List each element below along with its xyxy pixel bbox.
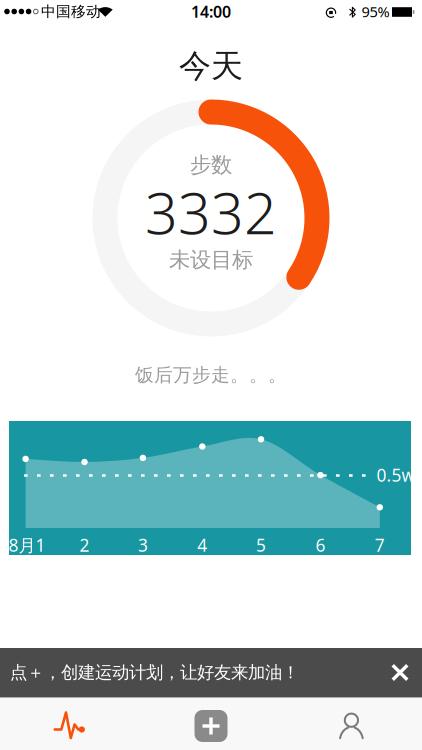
staticText: 中国移动 [41,2,101,20]
staticText: 8月1 [8,533,45,556]
staticText: 5 [256,533,266,556]
staticText: 6 [315,533,325,556]
staticText: 14:00 [191,1,231,22]
button[interactable] [0,700,140,750]
staticText: 0.5w [376,463,415,486]
button[interactable] [141,700,281,750]
staticText: 3332 [145,174,277,250]
staticText: 95% [361,2,389,21]
staticText: 饭后万步走。。。 [135,363,287,386]
staticText: 3 [138,533,148,556]
staticText: 4 [197,533,207,556]
staticText: 未设目标 [169,247,253,273]
staticText: 7 [375,533,385,556]
staticText: 2 [79,533,89,556]
button[interactable] [282,700,422,750]
staticText: 步数 [190,152,232,178]
staticText: 今天 [179,46,243,86]
staticText: 点＋，创建运动计划，让好友来加油！ [10,662,299,683]
button[interactable] [378,648,422,697]
